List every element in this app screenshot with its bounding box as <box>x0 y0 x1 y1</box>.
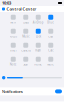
button[interactable]: Music <box>19 27 32 40</box>
staticText: More <box>47 63 54 66</box>
button[interactable]: Camera <box>19 41 32 54</box>
button[interactable]: Focus <box>7 27 19 40</box>
button[interactable]: Calc <box>44 41 57 54</box>
staticText: Camera <box>21 49 30 52</box>
staticText: Lock <box>36 35 41 38</box>
staticText: Calc <box>48 49 53 52</box>
staticText: Focus <box>10 35 17 38</box>
button[interactable]: AirDrop <box>32 13 44 26</box>
staticText: Data <box>23 21 28 24</box>
staticText: Timer <box>10 49 17 52</box>
staticText: Cast <box>48 35 53 38</box>
staticText: 10:03 <box>2 0 11 6</box>
button[interactable]: More <box>44 55 57 68</box>
button[interactable]: Lock <box>32 27 44 40</box>
button[interactable]: Wi-Fi <box>7 13 19 26</box>
staticText: Note <box>10 63 17 66</box>
staticText: Home <box>34 63 42 66</box>
staticText: Flash <box>35 49 41 52</box>
button[interactable]: Blue <box>44 13 57 26</box>
button[interactable]: Home <box>32 55 44 68</box>
staticText: Music <box>22 35 29 38</box>
staticText: AirDrop <box>33 21 44 24</box>
button[interactable]: Cast <box>44 27 57 40</box>
staticText: Control Center <box>6 6 36 12</box>
button[interactable]: Timer <box>7 41 19 54</box>
staticText: Wi-Fi <box>10 21 16 24</box>
staticText: Blue <box>47 21 54 24</box>
button[interactable]: Flash <box>32 41 44 54</box>
button[interactable]: Data <box>19 13 32 26</box>
staticText: Scan <box>23 63 28 66</box>
button[interactable]: Note <box>7 55 19 68</box>
staticText: Notifications <box>2 89 23 94</box>
button[interactable]: Scan <box>19 55 32 68</box>
